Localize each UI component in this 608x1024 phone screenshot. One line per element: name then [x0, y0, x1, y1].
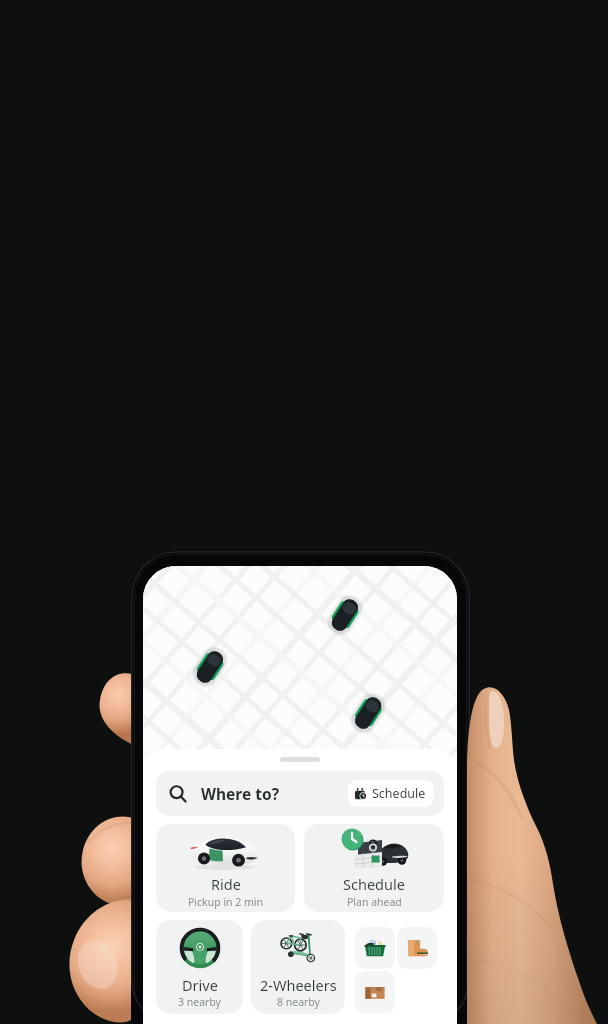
staticText: Drive — [182, 975, 218, 995]
staticText: 8 nearby — [277, 995, 320, 1009]
button[interactable]: Food — [397, 927, 437, 969]
button[interactable]: Schedule — [348, 780, 434, 807]
staticText: 3 nearby — [178, 995, 221, 1009]
button[interactable]: Ride — [156, 824, 295, 912]
button[interactable]: Drive — [156, 920, 243, 1014]
staticText: Pickup in 2 min — [188, 895, 264, 909]
button[interactable]: 2-Wheelers — [251, 920, 345, 1014]
staticText: Plan ahead — [347, 895, 402, 909]
staticText: Where to? — [201, 783, 280, 804]
staticText: Schedule — [343, 874, 405, 894]
staticText: Schedule — [372, 785, 426, 802]
staticText: Ride — [211, 874, 241, 894]
button[interactable]: Schedule — [304, 824, 444, 912]
staticText: 2-Wheelers — [260, 975, 337, 995]
button[interactable]: Groceries — [355, 927, 395, 969]
button[interactable]: Where to? — [156, 771, 444, 816]
button[interactable]: Parcel — [355, 971, 395, 1014]
